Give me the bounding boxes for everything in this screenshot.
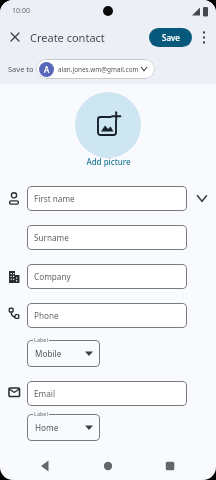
staticText: Save to <box>8 64 34 74</box>
staticText: Email <box>34 388 56 399</box>
staticText: Phone <box>34 310 59 321</box>
staticText: Home <box>35 422 59 433</box>
staticText: Surname <box>34 232 69 243</box>
button[interactable] <box>93 455 123 477</box>
staticText: Label <box>34 410 48 417</box>
button[interactable] <box>197 28 211 47</box>
button[interactable]: A <box>36 59 155 79</box>
staticText: Add picture <box>86 156 131 167</box>
button[interactable]: Email <box>27 381 187 406</box>
button[interactable]: Phone <box>27 303 187 328</box>
staticText: Create contact <box>30 30 105 45</box>
button[interactable] <box>7 29 23 45</box>
staticText: 10:00 <box>12 6 30 16</box>
staticText: alan.jones.wm@gmail.com <box>58 65 139 74</box>
button[interactable]: Save <box>149 28 192 47</box>
staticText: Save <box>162 32 180 43</box>
button[interactable]: Home <box>27 414 100 441</box>
button[interactable]: Surname <box>27 225 187 250</box>
button[interactable] <box>155 455 185 477</box>
button[interactable] <box>30 455 60 477</box>
staticText: A <box>44 64 50 75</box>
staticText: Mobile <box>35 348 62 359</box>
staticText: First name <box>34 193 75 204</box>
button[interactable]: First name <box>27 186 187 211</box>
staticText: Label <box>34 336 48 343</box>
staticText: Company <box>34 271 71 282</box>
button[interactable] <box>75 92 141 158</box>
button[interactable] <box>194 190 210 206</box>
button[interactable]: Mobile <box>27 340 100 367</box>
button[interactable]: Company <box>27 264 187 289</box>
